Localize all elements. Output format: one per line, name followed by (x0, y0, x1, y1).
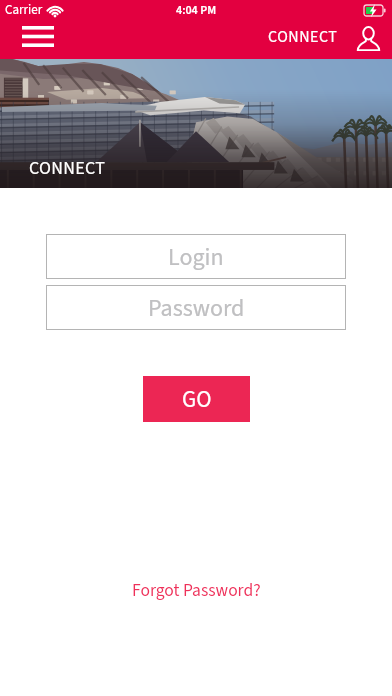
staticText: Carrier (5, 1, 43, 20)
staticText: CONNECT (29, 156, 106, 182)
button[interactable]: Account (355, 24, 381, 50)
button[interactable]: Login (46, 234, 346, 279)
button[interactable]: CONNECT (268, 26, 338, 49)
staticText: Login (168, 240, 224, 274)
button[interactable]: Open navigation menu (22, 24, 66, 56)
button[interactable]: GO (143, 376, 250, 422)
button[interactable]: Password (46, 285, 346, 330)
staticText: Password (148, 291, 245, 325)
staticText: GO (182, 383, 212, 416)
button[interactable]: Forgot Password? (132, 578, 261, 603)
staticText: 4:04 PM (176, 2, 217, 19)
